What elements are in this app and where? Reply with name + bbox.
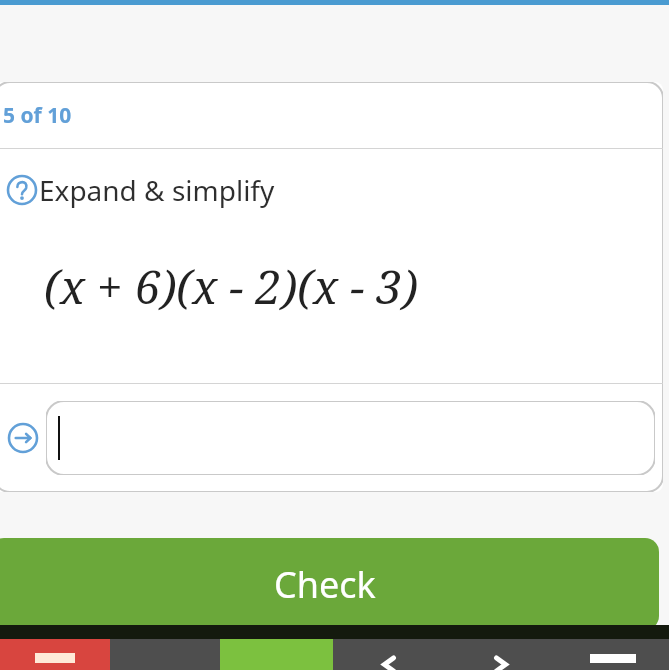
- other: Help: [5, 173, 39, 207]
- button[interactable]: Help: [0, 149, 663, 231]
- staticText: Check: [274, 560, 376, 609]
- button[interactable]: Previous: [333, 639, 445, 670]
- button[interactable]: Next: [445, 639, 557, 670]
- button[interactable]: Backspace: [557, 639, 669, 670]
- button[interactable]: [46, 401, 655, 475]
- button[interactable]: 5 of 10: [0, 82, 663, 148]
- staticText: (x + 6)(x − 2)(x − 3): [44, 255, 418, 318]
- staticText: 5 of 10: [3, 101, 72, 130]
- button[interactable]: Submit answer: [6, 421, 40, 455]
- staticText: Expand & simplify: [39, 171, 275, 209]
- button[interactable]: Check: [0, 538, 659, 630]
- button[interactable]: Clear: [0, 639, 110, 670]
